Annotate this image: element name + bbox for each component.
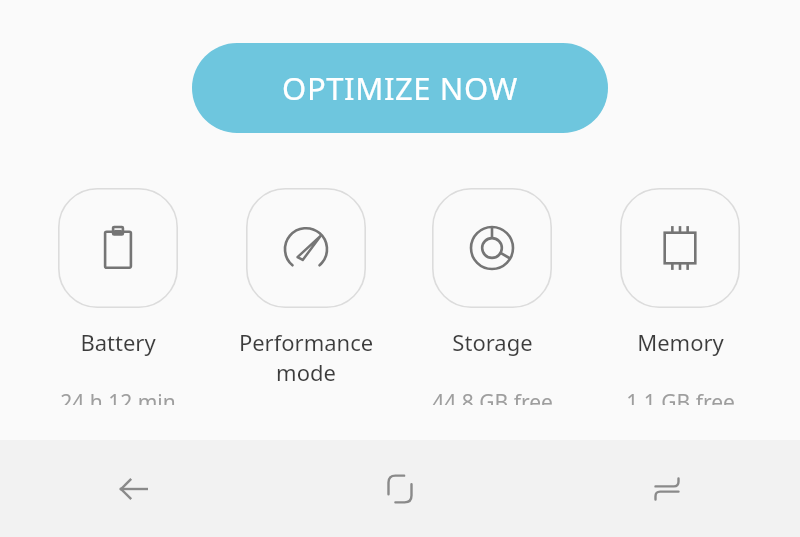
- staticText: Memory: [637, 327, 724, 357]
- staticText: 24 h 12 min: [60, 388, 176, 405]
- button[interactable]: OPTIMIZE NOW: [192, 43, 608, 133]
- button[interactable]: Battery: [24, 180, 212, 405]
- staticText: OPTIMIZE NOW: [282, 67, 518, 109]
- button[interactable]: Performance mode: [212, 180, 400, 405]
- staticText: 1.1 GB free: [626, 388, 735, 405]
- button[interactable]: Back: [0, 440, 266, 537]
- staticText: 44.8 GB free: [432, 388, 553, 405]
- staticText: Storage: [452, 327, 533, 357]
- button[interactable]: Storage: [398, 180, 586, 405]
- button[interactable]: Home: [266, 440, 533, 537]
- button[interactable]: Memory: [586, 180, 774, 405]
- staticText: Performance mode: [212, 327, 400, 387]
- button[interactable]: Recents: [533, 440, 800, 537]
- staticText: Battery: [80, 327, 156, 357]
